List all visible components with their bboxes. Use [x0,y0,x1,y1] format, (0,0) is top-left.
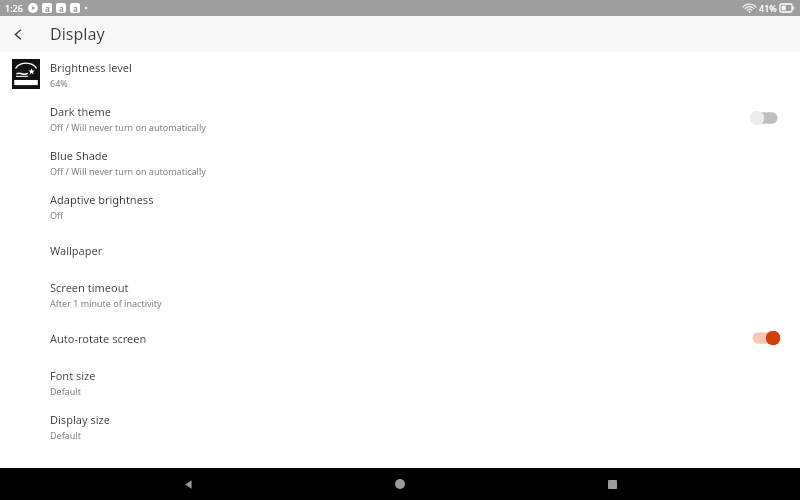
staticText: Dark theme [50,104,111,119]
staticText: Default [50,429,81,441]
staticText: Off / Will never turn on automatically [50,165,206,177]
staticText: Off / Will never turn on automatically [50,121,206,133]
button[interactable]: Blue Shade [0,140,800,184]
button[interactable]: Toggle off [748,107,782,129]
staticText: After 1 minute of inactivity [50,297,162,309]
staticText: Auto-rotate screen [50,331,147,346]
staticText: Adaptive brightness [50,192,154,207]
button[interactable]: Display size [0,404,800,448]
button[interactable]: Screen timeout [0,272,800,316]
staticText: Blue Shade [50,148,108,163]
button[interactable]: Toggle on [748,327,782,349]
button[interactable]: Wallpaper [0,228,800,272]
button[interactable]: Recents [588,468,636,500]
staticText: Brightness level [50,60,132,75]
button[interactable]: Back [164,468,212,500]
staticText: 41% [759,2,777,14]
staticText: 64% [50,77,68,89]
staticText: Off [50,209,64,221]
staticText: Font size [50,368,96,383]
staticText: Wallpaper [50,243,103,258]
button[interactable]: Dark theme [0,96,800,140]
staticText: a [73,3,78,13]
staticText: a [45,3,50,13]
staticText: Screen timeout [50,280,129,295]
button[interactable]: Back [0,16,36,52]
staticText: a [59,3,64,13]
button[interactable]: Font size [0,360,800,404]
staticText: Display [50,23,105,45]
staticText: Display size [50,412,110,427]
staticText: 1:26 [5,2,23,14]
button[interactable]: Home [376,468,424,500]
button[interactable]: Auto-rotate screen [0,316,800,360]
button[interactable]: Brightness level [0,52,800,96]
staticText: Default [50,385,81,397]
button[interactable]: Adaptive brightness [0,184,800,228]
